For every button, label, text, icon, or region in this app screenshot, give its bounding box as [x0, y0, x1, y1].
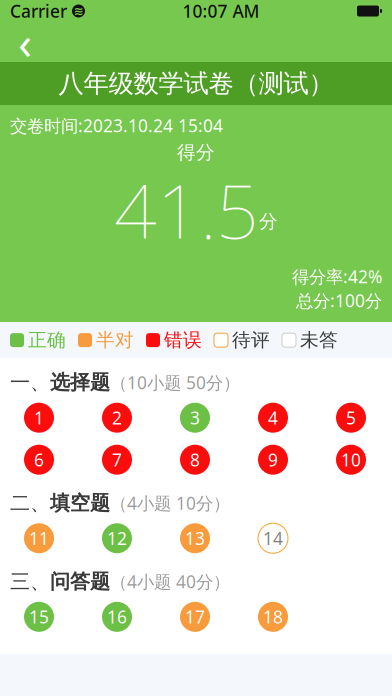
- staticText: 7: [112, 448, 122, 471]
- button[interactable]: Back: [0, 22, 50, 62]
- staticText: （4小题 40分）: [110, 570, 230, 593]
- staticText: 41.5: [114, 160, 259, 259]
- staticText: 11: [29, 527, 49, 550]
- staticText: 三、: [10, 569, 50, 594]
- staticText: 问答题: [50, 569, 110, 594]
- staticText: 待评: [232, 329, 270, 352]
- button[interactable]: 1: [24, 403, 102, 433]
- staticText: 14: [263, 527, 283, 550]
- staticText: 未答: [300, 329, 338, 352]
- staticText: 9: [268, 448, 278, 471]
- staticText: 填空题: [50, 491, 110, 515]
- button[interactable]: 13: [180, 523, 258, 553]
- button[interactable]: 5: [336, 403, 392, 433]
- staticText: 得分率:42%: [292, 265, 382, 288]
- staticText: （10小题 50分）: [110, 371, 240, 394]
- staticText: 10: [341, 448, 361, 471]
- staticText: 分: [259, 210, 278, 233]
- staticText: 一、: [10, 370, 50, 395]
- staticText: ≋: [73, 4, 83, 18]
- staticText: ‹: [18, 12, 32, 72]
- button[interactable]: 8: [180, 445, 258, 475]
- staticText: 5: [346, 406, 356, 429]
- button[interactable]: 10: [336, 445, 392, 475]
- staticText: 1: [34, 406, 44, 429]
- staticText: 选择题: [50, 370, 110, 395]
- staticText: Carrier: [10, 0, 67, 22]
- staticText: 18: [263, 605, 283, 628]
- staticText: 交卷时间:2023.10.24 15:04: [10, 114, 223, 137]
- staticText: 6: [34, 448, 44, 471]
- staticText: 8: [190, 448, 200, 471]
- button[interactable]: 16: [102, 602, 180, 632]
- staticText: 八年级数学试卷（测试）: [58, 68, 333, 99]
- staticText: 总分:100分: [296, 289, 382, 312]
- staticText: 10:07 AM: [182, 0, 259, 22]
- staticText: 得分: [177, 141, 215, 164]
- button[interactable]: 18: [258, 602, 336, 632]
- button[interactable]: 2: [102, 403, 180, 433]
- button[interactable]: 6: [24, 445, 102, 475]
- staticText: 3: [190, 406, 200, 429]
- button[interactable]: 4: [258, 403, 336, 433]
- button[interactable]: 3: [180, 403, 258, 433]
- staticText: 二、: [10, 491, 50, 515]
- staticText: 4: [268, 406, 278, 429]
- button[interactable]: 17: [180, 602, 258, 632]
- staticText: 12: [107, 527, 127, 550]
- staticText: 2: [112, 406, 122, 429]
- staticText: 错误: [164, 329, 202, 352]
- button[interactable]: 12: [102, 523, 180, 553]
- button[interactable]: 9: [258, 445, 336, 475]
- staticText: （4小题 10分）: [110, 491, 230, 514]
- staticText: 16: [107, 605, 127, 628]
- staticText: [67, 0, 72, 22]
- button[interactable]: 7: [102, 445, 180, 475]
- button[interactable]: 11: [24, 523, 102, 553]
- button[interactable]: 14: [258, 523, 336, 553]
- staticText: 正确: [28, 329, 66, 352]
- staticText: 17: [185, 605, 205, 628]
- staticText: 半对: [96, 329, 134, 352]
- staticText: 13: [185, 527, 205, 550]
- button[interactable]: 15: [24, 602, 102, 632]
- staticText: 15: [29, 605, 49, 628]
